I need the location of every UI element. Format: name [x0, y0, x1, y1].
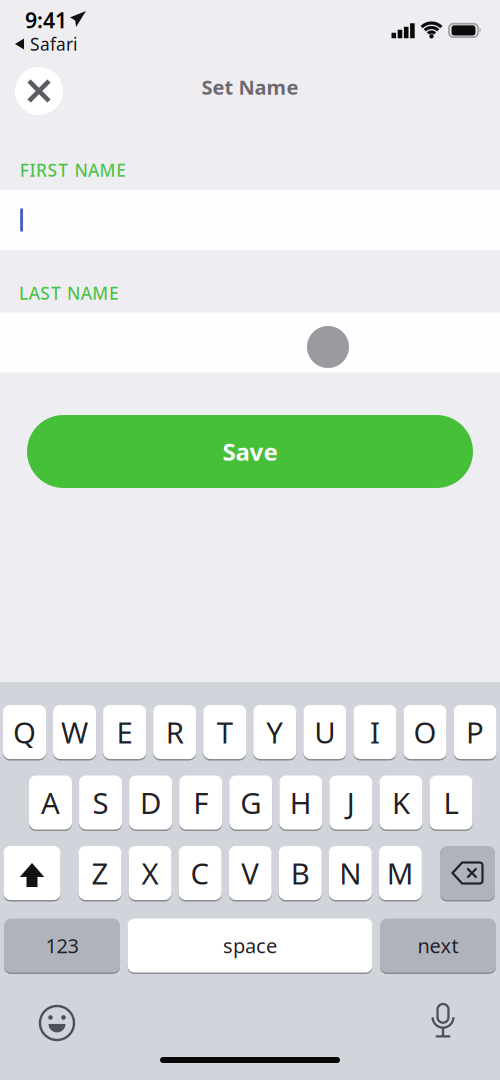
button[interactable]: S [79, 774, 122, 830]
staticText: Save [222, 436, 277, 467]
button[interactable]: V [229, 845, 272, 901]
staticText: E [117, 712, 133, 751]
staticText: X [142, 853, 159, 892]
button[interactable]: Shift [3, 845, 60, 901]
staticText: R [166, 712, 184, 751]
staticText: A [41, 783, 60, 822]
button[interactable]: Delete [440, 845, 495, 901]
button[interactable]: H [279, 774, 322, 830]
staticText: S [93, 783, 109, 822]
button[interactable]: B [279, 845, 322, 901]
button[interactable]: First Name [0, 190, 500, 250]
button[interactable]: X [129, 845, 172, 901]
staticText: 9:41 [25, 6, 67, 34]
staticText: 123 [45, 932, 78, 959]
staticText: FIRST NAME [20, 158, 126, 181]
button[interactable]: Z [78, 845, 121, 901]
staticText: C [191, 853, 210, 892]
button[interactable]: U [303, 704, 346, 760]
staticText: G [240, 783, 261, 822]
staticText: K [392, 783, 410, 822]
button[interactable]: Save [27, 415, 473, 488]
staticText: P [466, 712, 484, 751]
button[interactable]: J [329, 774, 372, 830]
button[interactable]: G [229, 774, 272, 830]
button[interactable]: E [103, 704, 146, 760]
button[interactable]: Dictation [421, 1000, 465, 1044]
staticText: H [290, 783, 312, 822]
button[interactable]: I [353, 704, 396, 760]
staticText: J [347, 783, 355, 822]
button[interactable]: 123 [4, 917, 120, 973]
staticText: L [443, 783, 458, 822]
button[interactable]: Last Name [0, 312, 500, 372]
staticText: W [61, 712, 88, 751]
button[interactable]: Close [15, 67, 63, 115]
button[interactable]: N [329, 845, 372, 901]
button[interactable]: F [179, 774, 222, 830]
staticText: M [387, 853, 414, 892]
staticText: LAST NAME [19, 281, 119, 304]
staticText: Safari [30, 32, 77, 55]
staticText: F [193, 783, 208, 822]
button[interactable]: T [203, 704, 246, 760]
button[interactable]: next [380, 917, 496, 973]
staticText: next [417, 932, 458, 959]
staticText: Set Name [201, 74, 298, 100]
staticText: I [370, 712, 380, 751]
button[interactable]: R [153, 704, 196, 760]
button[interactable]: Safari [15, 32, 77, 55]
staticText: U [314, 712, 335, 751]
staticText: T [217, 712, 233, 751]
button[interactable]: K [379, 774, 422, 830]
button[interactable]: Y [253, 704, 296, 760]
staticText: Z [91, 853, 108, 892]
staticText: N [339, 853, 361, 892]
button[interactable]: O [403, 704, 446, 760]
button[interactable]: Emoji [35, 1001, 79, 1045]
button[interactable]: A [29, 774, 72, 830]
button[interactable]: space [127, 917, 372, 973]
staticText: V [241, 853, 259, 892]
staticText: Y [266, 712, 283, 751]
button[interactable]: P [453, 704, 496, 760]
staticText: D [140, 783, 161, 822]
staticText: space [223, 932, 277, 959]
button[interactable]: M [379, 845, 422, 901]
button[interactable]: C [179, 845, 222, 901]
staticText: Q [13, 712, 36, 751]
button[interactable]: Q [3, 704, 46, 760]
staticText: B [291, 853, 310, 892]
button[interactable]: W [53, 704, 96, 760]
staticText: O [413, 712, 436, 751]
button[interactable]: L [429, 774, 472, 830]
button[interactable]: D [129, 774, 172, 830]
